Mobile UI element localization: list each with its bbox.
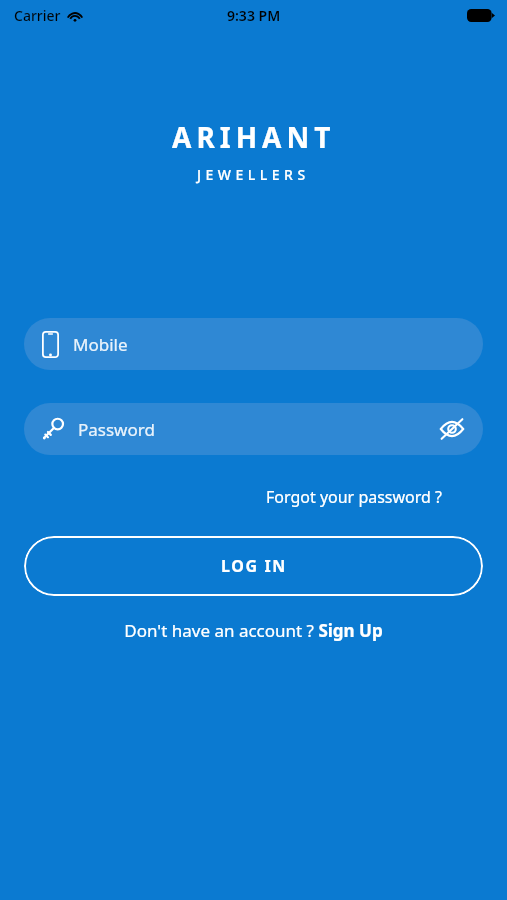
button[interactable]: Forgot your password ?	[262, 482, 447, 512]
button[interactable]: LOG IN	[24, 536, 483, 596]
button[interactable]: Show password	[435, 412, 469, 446]
staticText: Carrier	[14, 6, 61, 25]
button[interactable]: Mobile	[24, 318, 483, 370]
staticText: LOG IN	[221, 555, 287, 577]
staticText: JEWELLERS	[197, 165, 310, 184]
staticText: Mobile	[73, 333, 128, 356]
staticText: Forgot your password ?	[266, 486, 443, 508]
staticText: Don't have an account ? Sign Up	[124, 619, 383, 642]
staticText: Password	[78, 418, 155, 441]
staticText: 9:33 PM	[227, 6, 281, 25]
button[interactable]: Password	[24, 403, 483, 455]
button[interactable]: Don't have an account ? Sign Up	[118, 615, 389, 646]
staticText: ARIHANT	[172, 118, 336, 156]
